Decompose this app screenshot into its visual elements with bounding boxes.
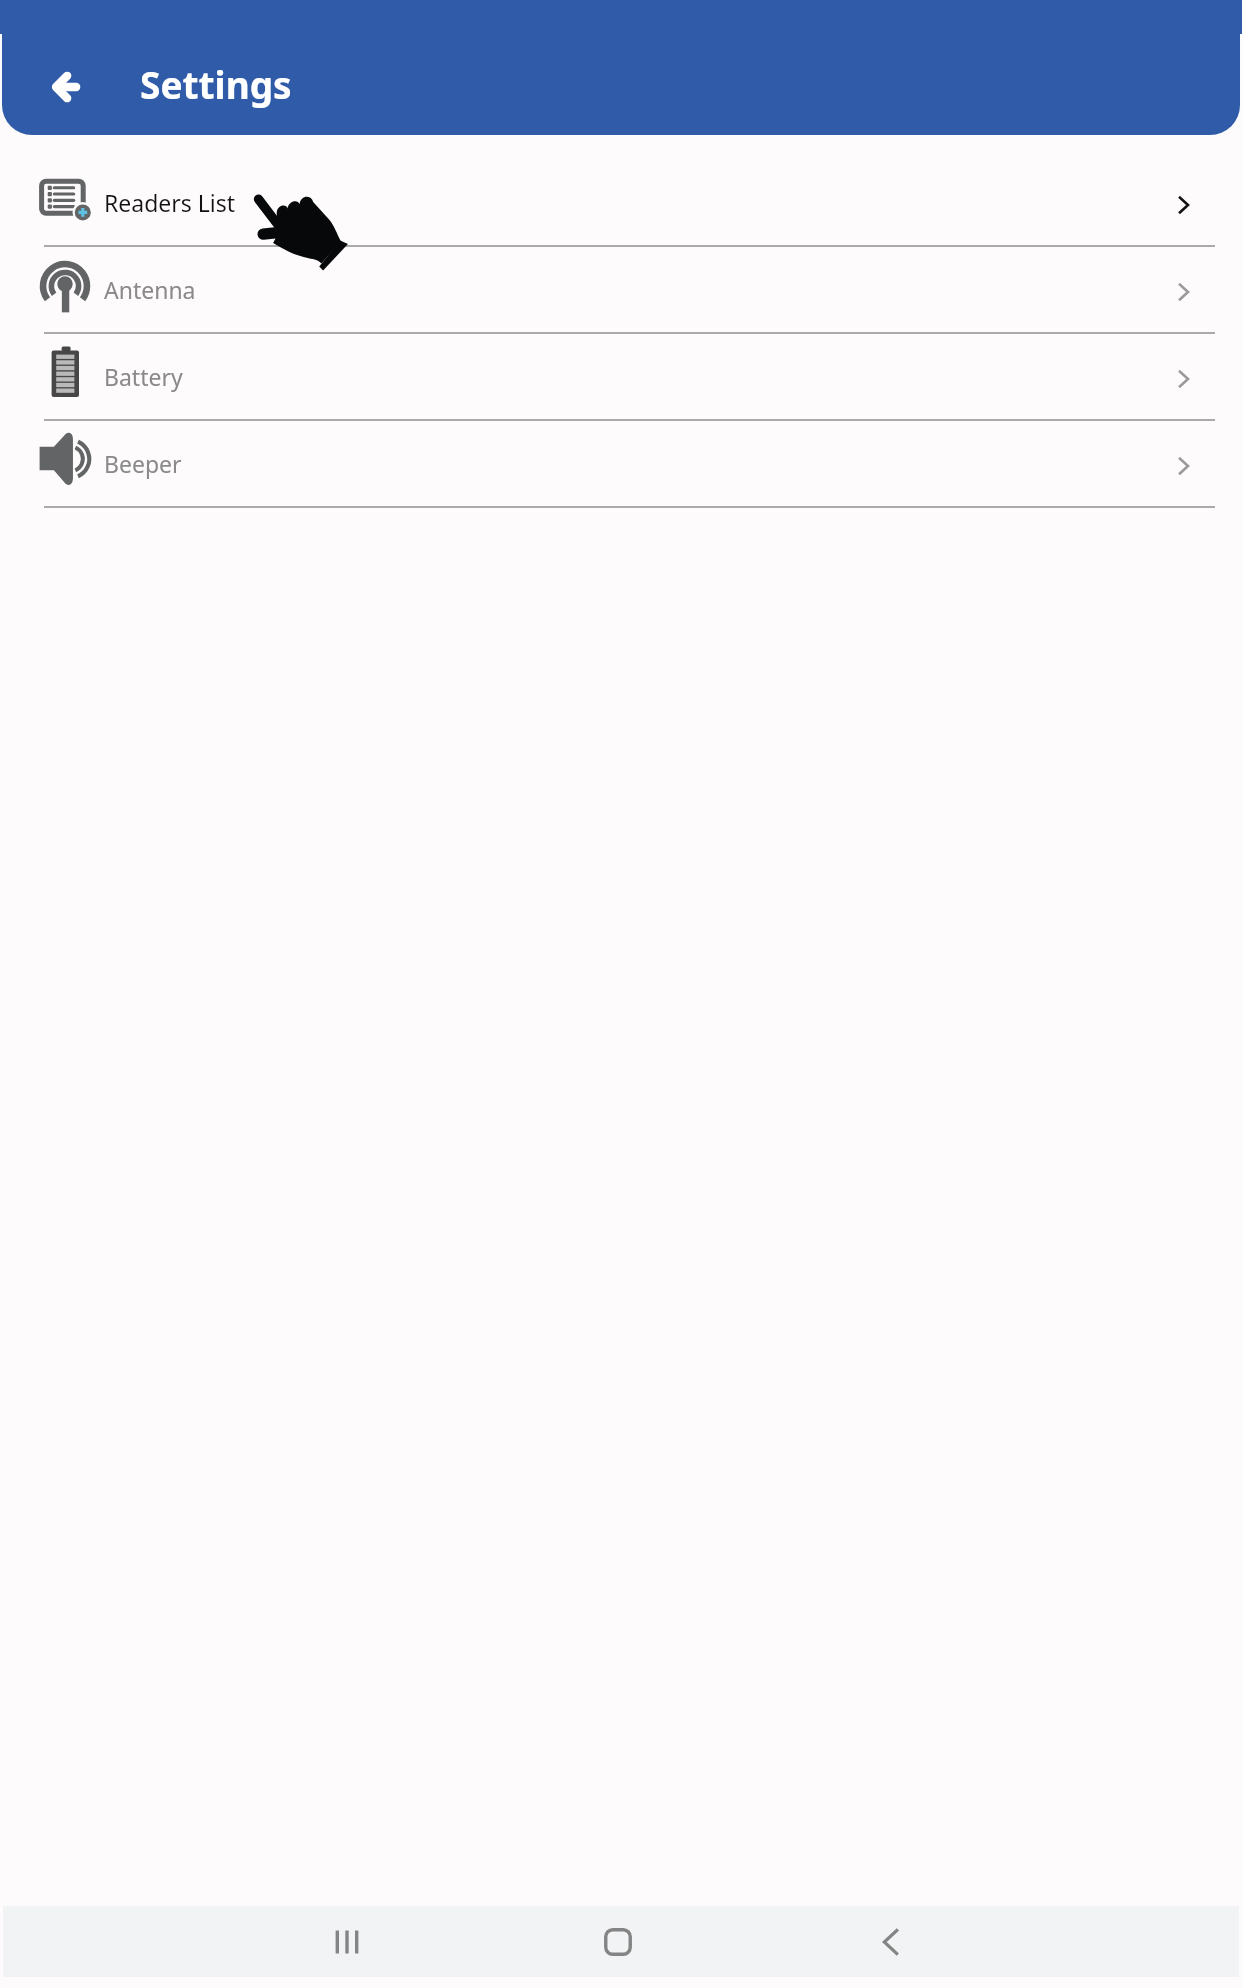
button[interactable]: Battery [0, 334, 1242, 421]
button[interactable]: Back [36, 57, 96, 117]
button[interactable]: Beeper [0, 421, 1242, 508]
button[interactable]: Antenna [0, 247, 1242, 334]
button[interactable]: Home [578, 1906, 658, 1977]
staticText: Readers List [104, 187, 236, 218]
button[interactable]: Recents [307, 1906, 387, 1977]
staticText: Beeper [104, 448, 182, 479]
staticText: Antenna [104, 274, 196, 305]
button[interactable]: Back [848, 1906, 928, 1977]
staticText: Battery [104, 361, 183, 392]
button[interactable]: Readers List [0, 160, 1242, 247]
staticText: Settings [140, 59, 292, 109]
